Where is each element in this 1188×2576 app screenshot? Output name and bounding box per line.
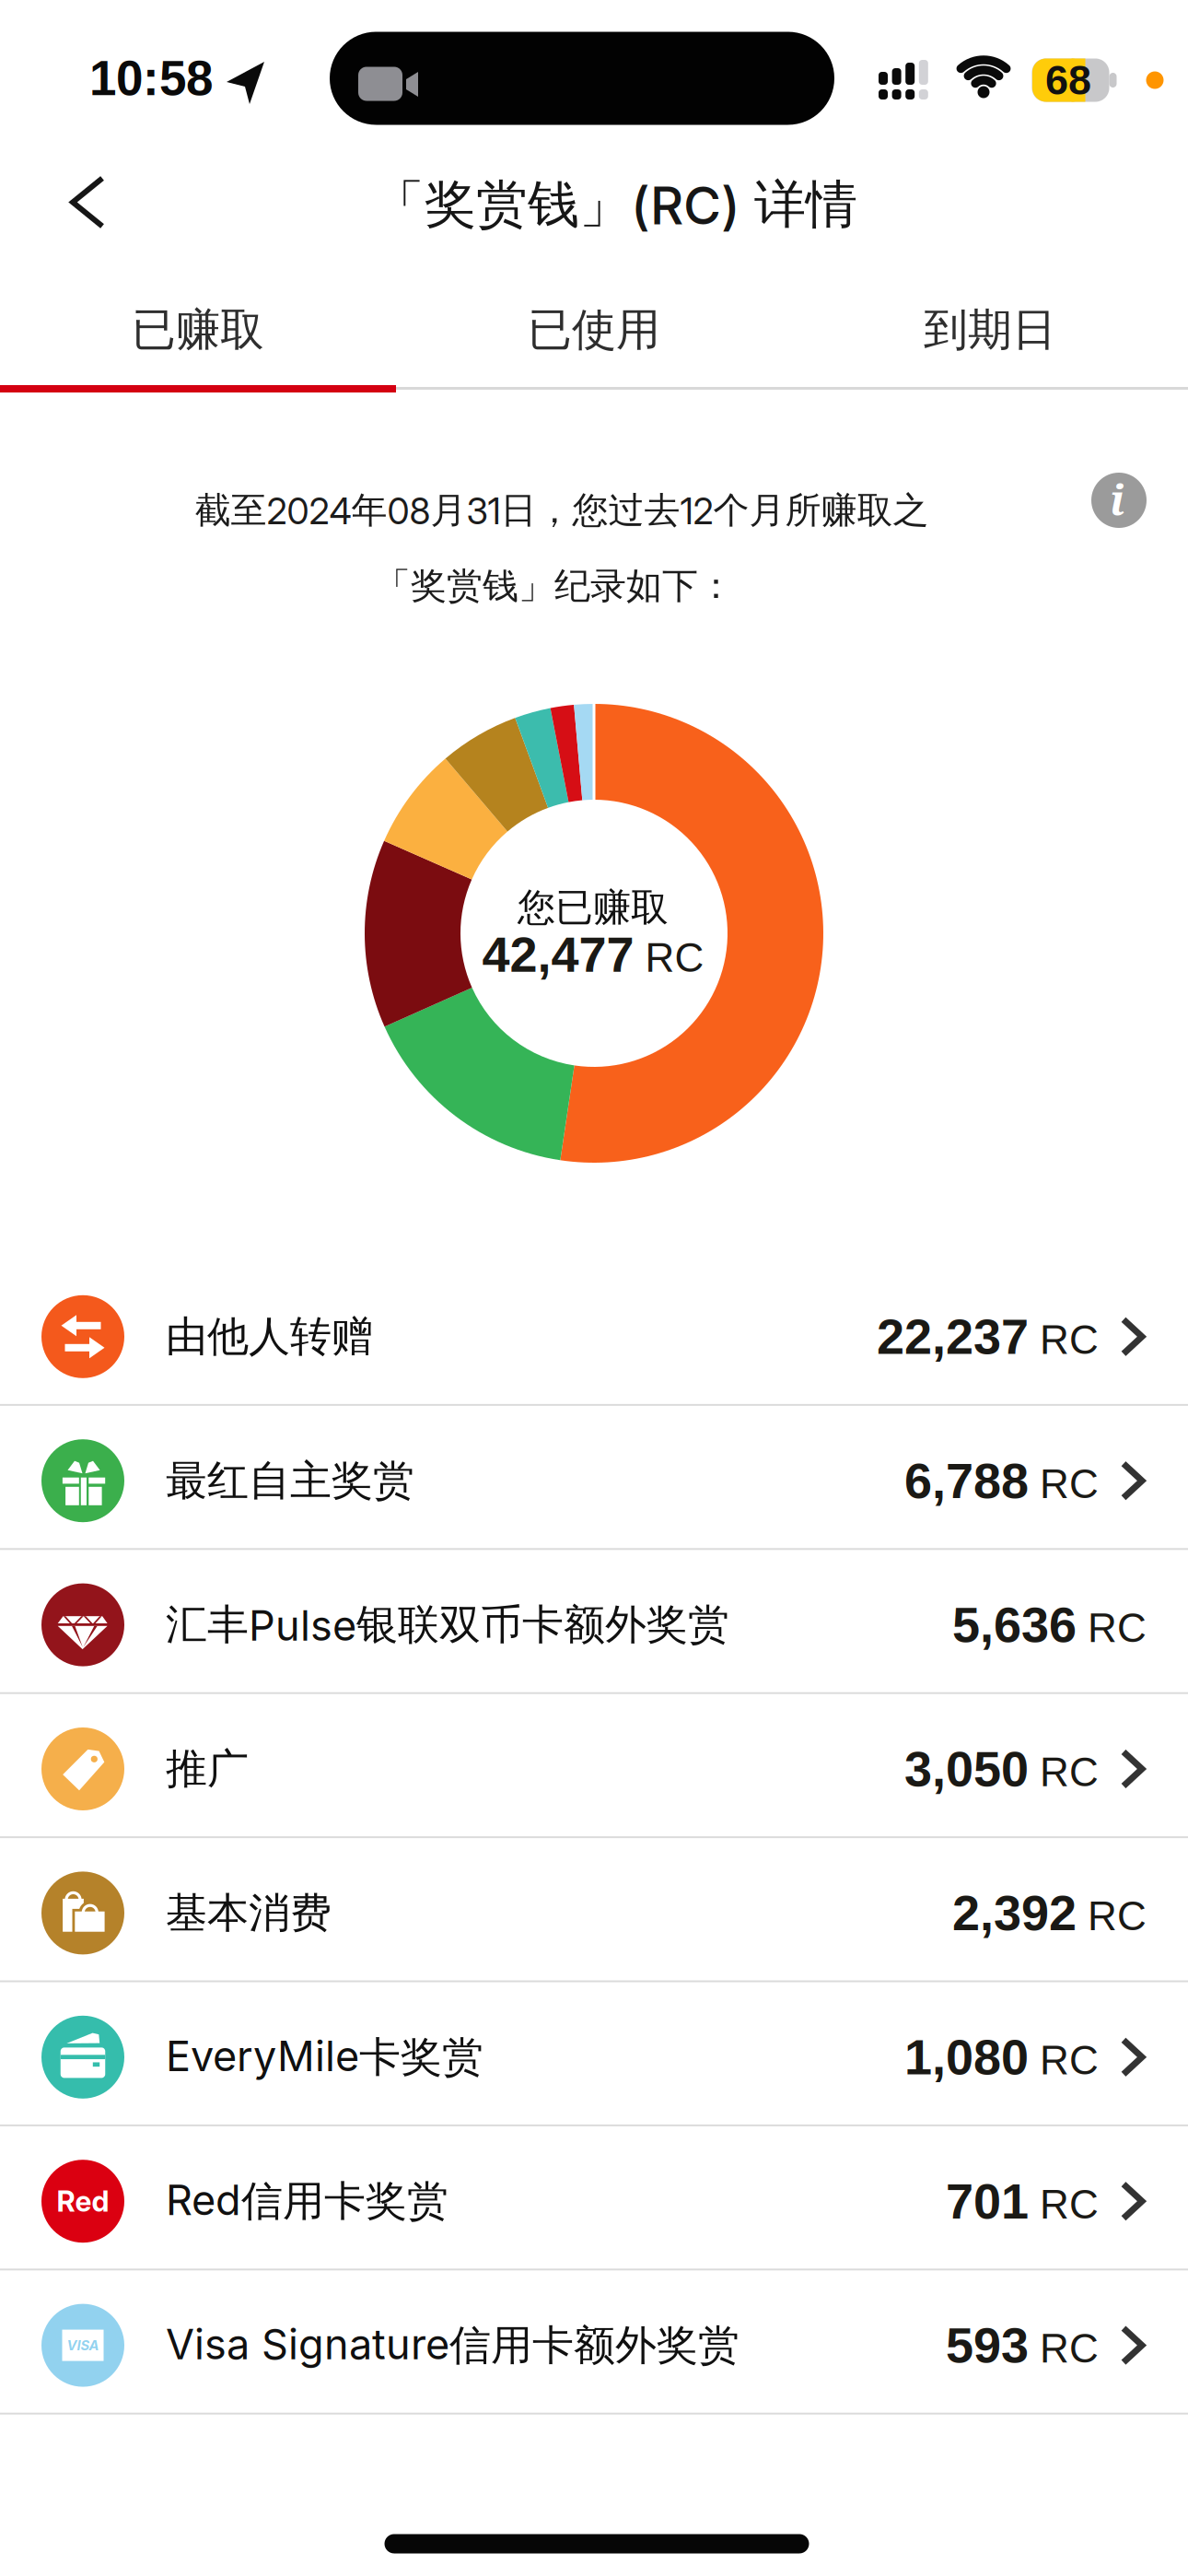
- staticText: i: [1110, 471, 1124, 528]
- staticText: 22,237 RC: [877, 1310, 1099, 1364]
- staticText: 已赚取: [132, 302, 264, 358]
- button[interactable]: More information: [1091, 473, 1147, 528]
- staticText: 593 RC: [946, 2318, 1099, 2372]
- button[interactable]: 由他人转赠: [0, 1266, 1188, 1408]
- button[interactable]: Red: [0, 2130, 1188, 2272]
- button[interactable]: 基本消费: [0, 1842, 1188, 1984]
- staticText: 5,636 RC: [952, 1598, 1147, 1652]
- staticText: 最红自主奖赏: [166, 1455, 414, 1507]
- staticText: 42,477 RC: [482, 927, 704, 982]
- button[interactable]: 已使用: [396, 275, 792, 385]
- staticText: 2,392 RC: [952, 1886, 1147, 1940]
- staticText: 「奖赏钱」纪录如下：: [375, 563, 734, 609]
- button[interactable]: 到期日: [792, 275, 1188, 385]
- button[interactable]: VISA: [0, 2274, 1188, 2416]
- staticText: 701 RC: [946, 2174, 1099, 2228]
- staticText: 68: [1045, 57, 1091, 103]
- staticText: 推广: [166, 1743, 249, 1795]
- staticText: 3,050 RC: [904, 1742, 1099, 1796]
- staticText: 10:58: [89, 51, 213, 106]
- staticText: 汇丰Pulse银联双币卡额外奖赏: [166, 1599, 729, 1651]
- staticText: Red信用卡奖赏: [166, 2175, 448, 2227]
- staticText: 您已赚取: [518, 884, 669, 931]
- staticText: Red: [57, 2184, 109, 2218]
- staticText: 1,080 RC: [904, 2030, 1099, 2084]
- staticText: 截至2024年08月31日，您过去12个月所赚取之: [195, 488, 929, 533]
- button[interactable]: 最红自主奖赏: [0, 1410, 1188, 1552]
- button[interactable]: 已赚取: [0, 275, 396, 385]
- button[interactable]: Back: [55, 170, 120, 234]
- staticText: 由他人转赠: [166, 1311, 373, 1363]
- staticText: VISA: [67, 2337, 99, 2353]
- staticText: 到期日: [924, 302, 1056, 358]
- staticText: 「奖赏钱」(RC) 详情: [373, 172, 857, 237]
- staticText: 已使用: [528, 302, 660, 358]
- staticText: EveryMile卡奖赏: [166, 2031, 483, 2083]
- staticText: Visa Signature信用卡额外奖赏: [166, 2319, 740, 2372]
- staticText: 基本消费: [166, 1887, 332, 1939]
- staticText: 6,788 RC: [904, 1454, 1099, 1508]
- button[interactable]: 推广: [0, 1698, 1188, 1840]
- button[interactable]: 汇丰Pulse银联双币卡额外奖赏: [0, 1554, 1188, 1696]
- button[interactable]: EveryMile卡奖赏: [0, 1986, 1188, 2128]
